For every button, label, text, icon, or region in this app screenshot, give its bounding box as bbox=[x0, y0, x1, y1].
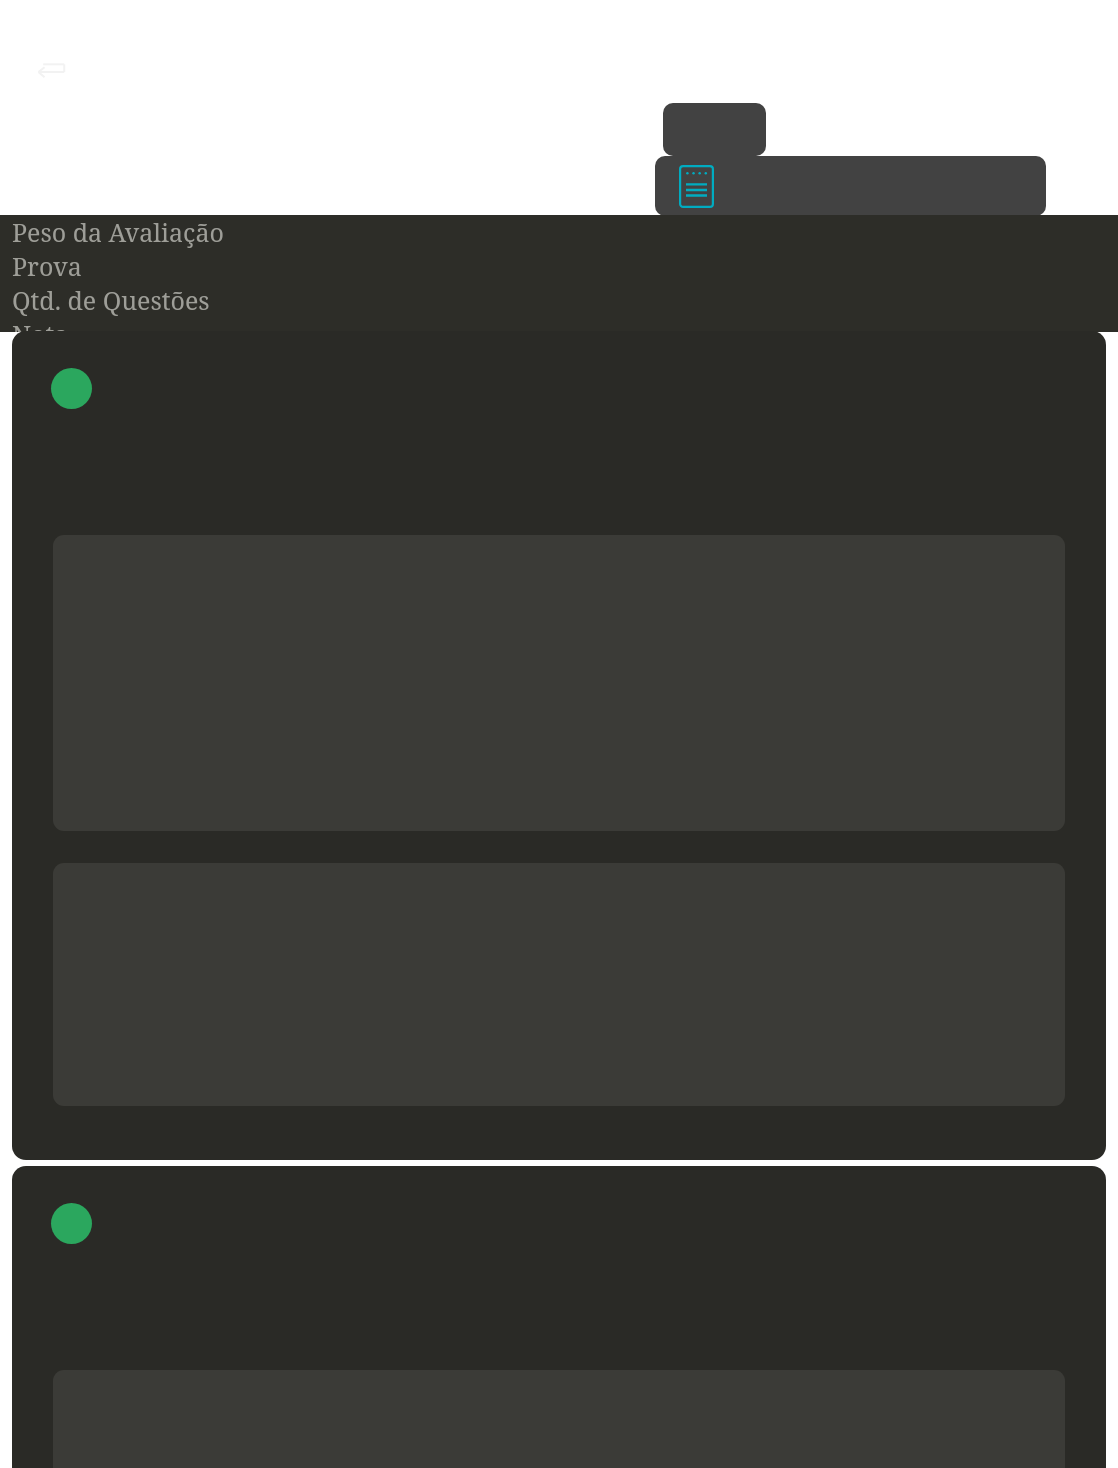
button[interactable] bbox=[12, 1166, 1106, 1468]
staticText: Peso da Avaliação bbox=[12, 215, 224, 249]
button[interactable] bbox=[655, 156, 1046, 216]
staticText: Qtd. de Questões bbox=[12, 283, 210, 317]
button[interactable] bbox=[663, 103, 766, 156]
staticText: Prova bbox=[12, 249, 82, 283]
button[interactable] bbox=[12, 331, 1106, 1160]
staticText: Nota bbox=[12, 317, 69, 332]
